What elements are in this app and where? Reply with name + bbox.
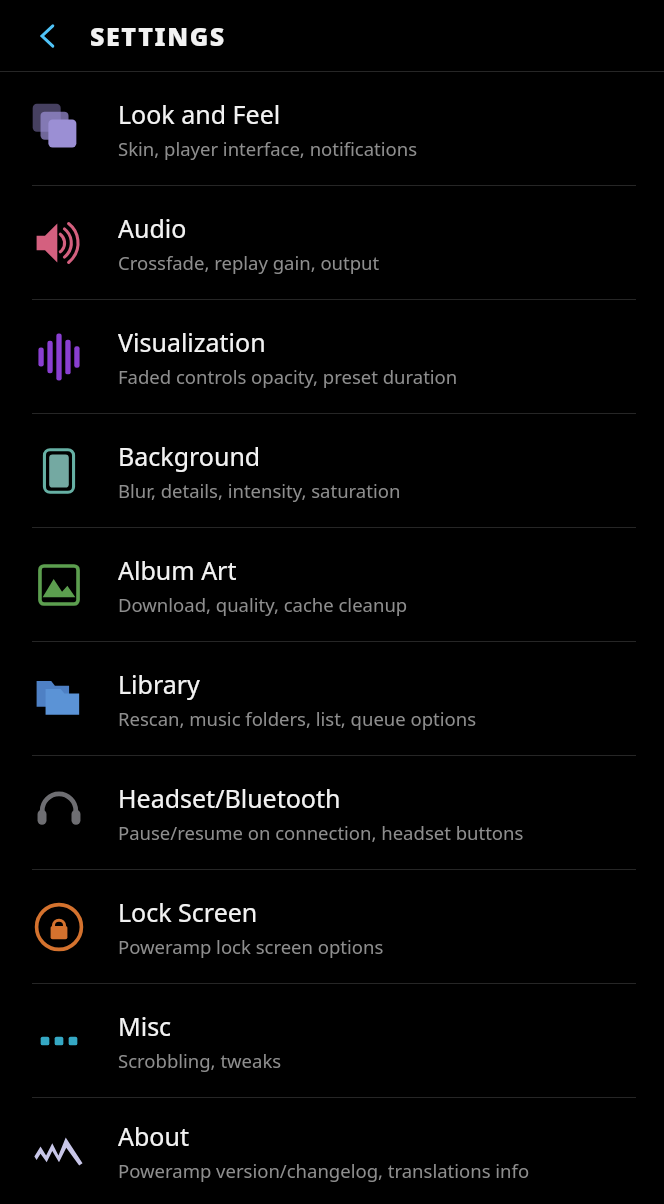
staticText: Skin, player interface, notifications [118, 136, 418, 161]
staticText: Misc [118, 1009, 172, 1043]
staticText: About [118, 1119, 189, 1153]
staticText: Background [118, 439, 261, 473]
staticText: Faded controls opacity, preset duration [118, 364, 458, 389]
staticText: Visualization [118, 325, 266, 359]
staticText: Lock Screen [118, 895, 258, 929]
button[interactable]: Lock Screen [0, 870, 664, 983]
staticText: Headset/Bluetooth [118, 781, 341, 815]
button[interactable]: Headset/Bluetooth [0, 756, 664, 869]
button[interactable]: Audio [0, 186, 664, 299]
staticText: Audio [118, 211, 187, 245]
staticText: Album Art [118, 553, 237, 587]
staticText: Scrobbling, tweaks [118, 1048, 282, 1073]
staticText: Pause/resume on connection, headset butt… [118, 820, 524, 845]
button[interactable]: Misc [0, 984, 664, 1097]
button[interactable]: Library [0, 642, 664, 755]
staticText: Look and Feel [118, 97, 281, 131]
button[interactable]: Look and Feel [0, 72, 664, 185]
staticText: Download, quality, cache cleanup [118, 592, 408, 617]
staticText: Poweramp lock screen options [118, 934, 384, 959]
staticText: Blur, details, intensity, saturation [118, 478, 401, 503]
button[interactable]: About [0, 1098, 664, 1204]
staticText: SETTINGS [90, 19, 226, 53]
button[interactable]: Background [0, 414, 664, 527]
staticText: Rescan, music folders, list, queue optio… [118, 706, 477, 731]
button[interactable]: Back [22, 10, 74, 62]
staticText: Crossfade, replay gain, output [118, 250, 380, 275]
button[interactable]: Visualization [0, 300, 664, 413]
staticText: Poweramp version/changelog, translations… [118, 1158, 530, 1183]
staticText: Library [118, 667, 200, 701]
button[interactable]: Album Art [0, 528, 664, 641]
